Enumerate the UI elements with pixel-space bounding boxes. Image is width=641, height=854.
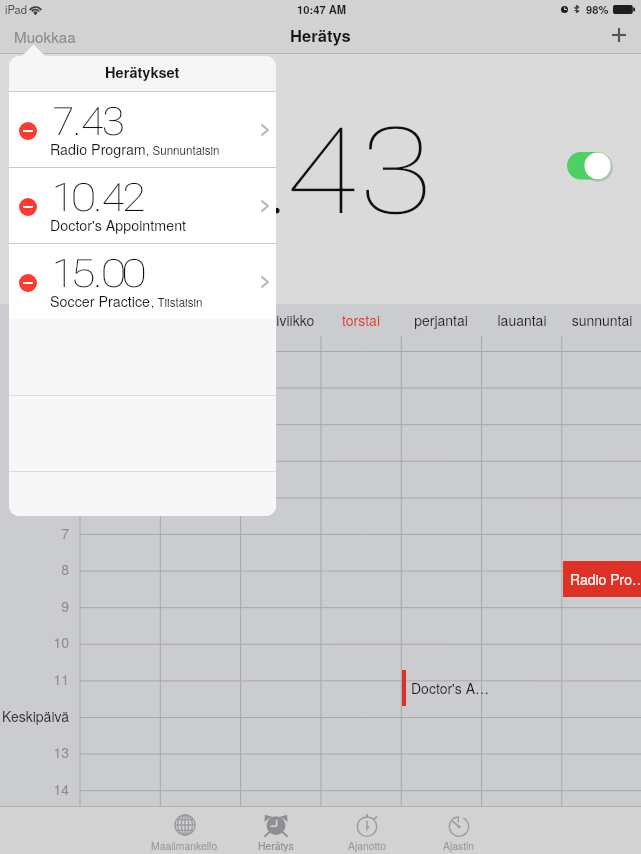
staticText: , Sunnuntaisin bbox=[146, 142, 220, 159]
button[interactable]: Herätys bbox=[231, 806, 321, 854]
staticText: Keskipäivä bbox=[0, 706, 69, 726]
staticText: Ajanotto bbox=[348, 838, 386, 853]
button[interactable]: Delete Radio Program bbox=[9, 92, 276, 167]
staticText: 8 bbox=[0, 559, 69, 579]
button[interactable]: Radio Pro… bbox=[563, 561, 641, 597]
staticText: Maailmankello bbox=[151, 838, 218, 853]
staticText: Radio Pro… bbox=[570, 569, 641, 589]
staticText: 13 bbox=[0, 742, 69, 762]
staticText: lauantai bbox=[462, 310, 582, 330]
staticText: Muokkaa bbox=[14, 26, 76, 48]
staticText: Herätys bbox=[290, 23, 351, 47]
staticText: 7 bbox=[0, 523, 69, 543]
staticText: Ajastin bbox=[443, 838, 475, 853]
staticText: tiistai bbox=[140, 310, 260, 330]
staticText: iPad bbox=[5, 1, 28, 17]
button[interactable]: Maailmankello bbox=[139, 806, 229, 854]
staticText: 11 bbox=[0, 669, 69, 689]
button[interactable]: Alarm enabled bbox=[567, 150, 614, 181]
button[interactable]: Delete Doctor's Appointment bbox=[19, 198, 37, 216]
staticText: Herätys bbox=[258, 838, 294, 853]
staticText: Doctor's A… bbox=[411, 678, 489, 698]
button[interactable]: Delete Soccer Practice bbox=[9, 244, 276, 319]
button[interactable]: Ajastin bbox=[414, 806, 504, 854]
button[interactable]: Delete Doctor's Appointment bbox=[9, 168, 276, 243]
staticText: keskiviikko bbox=[221, 310, 341, 330]
staticText: 10:47 AM bbox=[297, 1, 347, 17]
staticText: , Tiistaisin bbox=[151, 294, 203, 311]
button[interactable]: Delete Radio Program bbox=[19, 122, 37, 140]
staticText: 9 bbox=[0, 596, 69, 616]
staticText: Herätykset bbox=[105, 62, 180, 83]
staticText: Soccer Practice bbox=[50, 291, 151, 311]
staticText: 98% bbox=[586, 1, 609, 17]
staticText: 14 bbox=[0, 779, 69, 799]
button[interactable]: Muokkaa bbox=[0, 20, 90, 54]
staticText: perjantai bbox=[381, 310, 501, 330]
staticText: maanantai bbox=[60, 310, 180, 330]
button[interactable]: Ajanotto bbox=[322, 806, 412, 854]
staticText: 10 bbox=[0, 632, 69, 652]
staticText: Doctor's Appointment bbox=[50, 215, 187, 235]
staticText: torstai bbox=[301, 310, 421, 330]
button[interactable]: Delete Soccer Practice bbox=[19, 274, 37, 292]
button[interactable]: Doctor's A… bbox=[402, 670, 489, 706]
staticText: Radio Program bbox=[50, 139, 146, 159]
button[interactable]: Add alarm bbox=[597, 20, 641, 50]
staticText: sunnuntai bbox=[542, 310, 641, 330]
